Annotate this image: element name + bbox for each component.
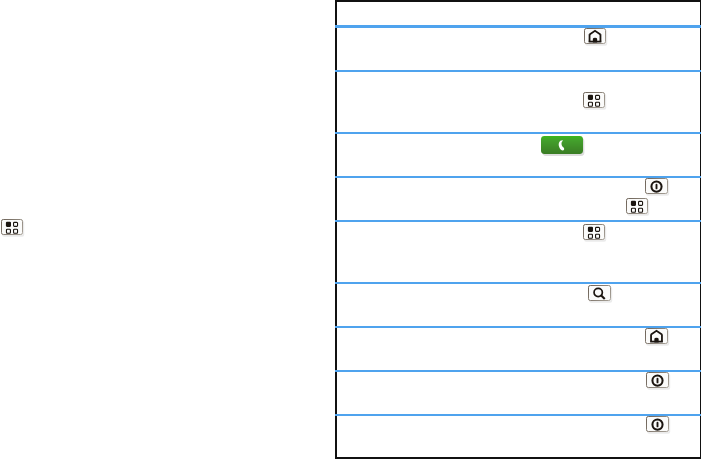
button[interactable]: Home	[584, 28, 608, 46]
button[interactable]: Apps	[1, 219, 25, 237]
button[interactable]: Call	[541, 136, 585, 156]
button[interactable]: Power	[645, 178, 670, 196]
button[interactable]: Apps	[626, 198, 650, 216]
button[interactable]: Home	[645, 328, 670, 346]
button[interactable]: Power	[646, 416, 671, 434]
button[interactable]: Apps	[583, 92, 607, 110]
button[interactable]: Power	[646, 372, 671, 390]
button[interactable]: Search	[588, 285, 613, 303]
button[interactable]: Apps	[583, 224, 607, 242]
